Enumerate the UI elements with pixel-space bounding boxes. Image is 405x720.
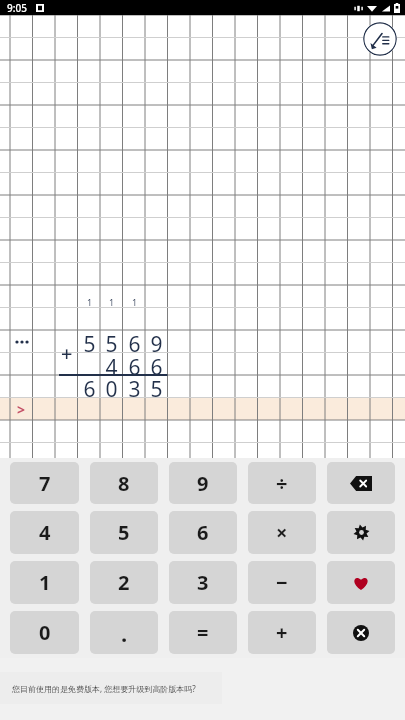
staticText: 6 <box>128 330 141 353</box>
staticText: 5 <box>105 330 118 353</box>
button[interactable]: = <box>169 611 237 654</box>
staticText: 1 <box>87 296 93 308</box>
staticText: 1 <box>109 296 115 308</box>
staticText: > <box>17 400 26 419</box>
staticText: + <box>276 619 288 646</box>
staticText: 3 <box>197 569 209 596</box>
button[interactable]: 1 <box>10 561 79 604</box>
staticText: ÷ <box>276 470 288 497</box>
button[interactable]: More options <box>10 330 33 353</box>
staticText: × <box>276 519 288 546</box>
staticText: 4 <box>105 353 118 376</box>
staticText: 7 <box>39 470 51 497</box>
staticText: 8 <box>118 470 130 497</box>
button[interactable]: ÷ <box>248 462 316 504</box>
button[interactable]: Settings <box>327 511 395 554</box>
staticText: 9 <box>150 330 163 353</box>
button[interactable]: 9 <box>169 462 237 504</box>
staticText: . <box>121 618 128 648</box>
button[interactable]: × <box>248 511 316 554</box>
button[interactable]: 2 <box>90 561 158 604</box>
button[interactable]: 4 <box>10 511 79 554</box>
staticText: 4 <box>39 519 51 546</box>
staticText: 9:05 <box>7 1 27 15</box>
button[interactable]: 7 <box>10 462 79 504</box>
button[interactable]: Backspace <box>327 462 395 504</box>
staticText: 6 <box>197 519 209 546</box>
staticText: 9 <box>197 470 209 497</box>
staticText: − <box>276 569 288 596</box>
button[interactable]: Clear <box>327 611 395 654</box>
button[interactable]: 8 <box>90 462 158 504</box>
button[interactable]: 您目前使用的是免费版本, 您想要升级到高阶版本吗? <box>0 672 222 704</box>
staticText: 0 <box>39 619 51 646</box>
staticText: 2 <box>118 569 130 596</box>
staticText: 6 <box>128 353 141 376</box>
staticText: 6 <box>150 353 163 376</box>
staticText: 1 <box>39 569 51 596</box>
staticText: 5 <box>150 375 163 398</box>
staticText: 6 <box>83 375 96 398</box>
button[interactable]: + <box>248 611 316 654</box>
staticText: + <box>61 340 73 363</box>
button[interactable]: 0 <box>10 611 79 654</box>
staticText: 5 <box>83 330 96 353</box>
button[interactable]: Clear all <box>363 22 397 56</box>
button[interactable]: 6 <box>169 511 237 554</box>
staticText: 5 <box>118 519 130 546</box>
button[interactable]: 5 <box>90 511 158 554</box>
button[interactable]: − <box>248 561 316 604</box>
button[interactable]: . <box>90 611 158 654</box>
staticText: 您目前使用的是免费版本, 您想要升级到高阶版本吗? <box>12 683 196 694</box>
staticText: 1 <box>132 296 138 308</box>
staticText: = <box>197 619 209 646</box>
button[interactable]: Favorite <box>327 561 395 604</box>
staticText: 0 <box>105 375 118 398</box>
button[interactable] <box>0 0 405 458</box>
button[interactable]: 3 <box>169 561 237 604</box>
staticText: 3 <box>128 375 141 398</box>
